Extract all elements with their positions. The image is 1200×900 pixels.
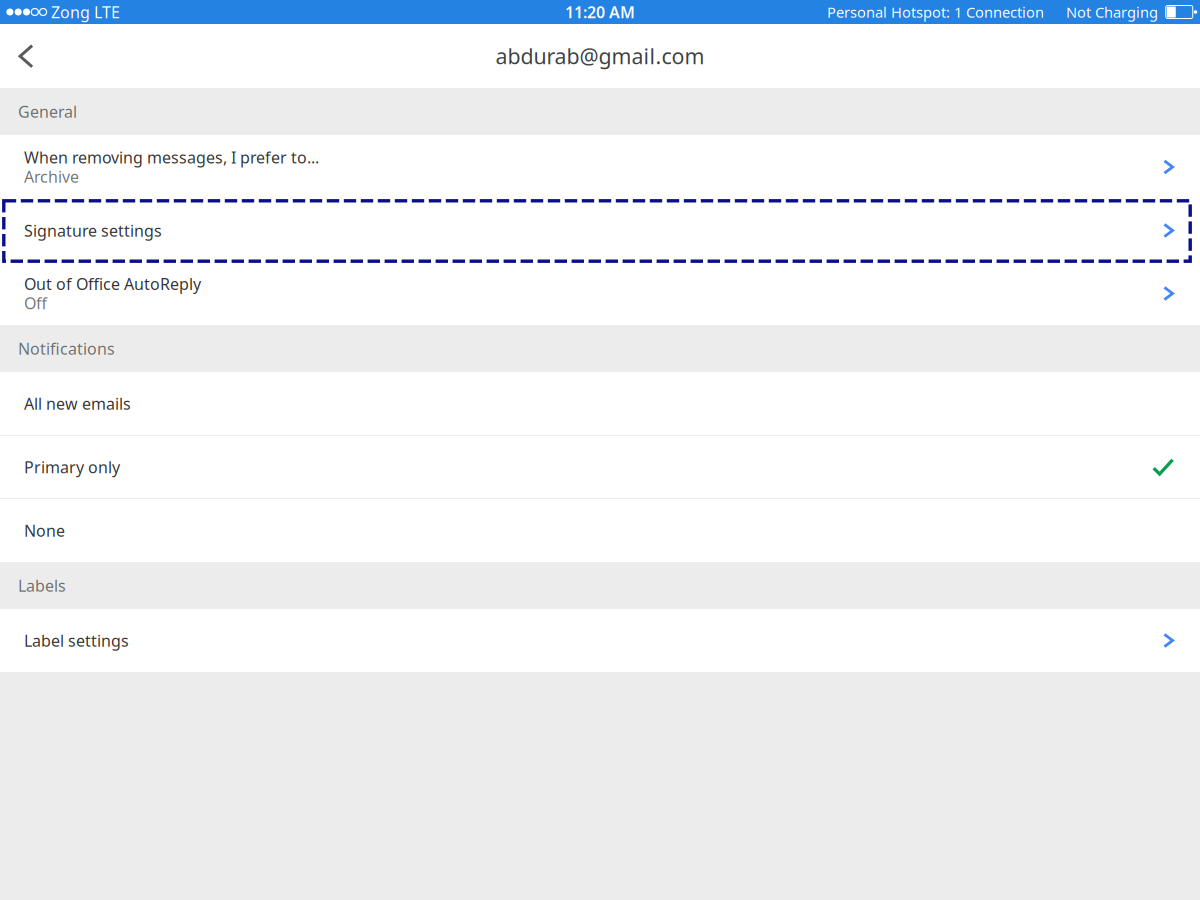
button[interactable]: Signature settings <box>0 199 1200 262</box>
staticText: Off <box>24 292 47 314</box>
staticText: abdurab@gmail.com <box>495 42 704 70</box>
staticText: Zong <box>51 1 90 23</box>
staticText: All new emails <box>24 393 131 414</box>
button[interactable]: All new emails <box>0 372 1200 435</box>
button[interactable]: Back <box>0 24 50 88</box>
staticText: Primary only <box>24 456 120 478</box>
button[interactable]: Label settings <box>0 609 1200 672</box>
staticText: Archive <box>24 166 79 187</box>
staticText: Signature settings <box>24 220 162 241</box>
button[interactable]: Out of Office AutoReply <box>0 262 1200 325</box>
staticText: Notifications <box>18 338 115 359</box>
staticText: Personal Hotspot: 1 Connection <box>827 2 1044 22</box>
staticText: LTE <box>94 1 120 23</box>
staticText: 11:20 AM <box>565 1 635 23</box>
staticText: Not Charging <box>1066 2 1158 22</box>
staticText: Label settings <box>24 630 129 651</box>
button[interactable]: When removing messages, I prefer to... <box>0 135 1200 199</box>
staticText: None <box>24 520 65 541</box>
staticText: General <box>18 101 77 122</box>
staticText: Labels <box>18 575 66 596</box>
button[interactable]: None <box>0 499 1200 562</box>
button[interactable]: Primary only <box>0 436 1200 498</box>
staticText: When removing messages, I prefer to... <box>24 147 319 168</box>
staticText: Out of Office AutoReply <box>24 273 201 294</box>
